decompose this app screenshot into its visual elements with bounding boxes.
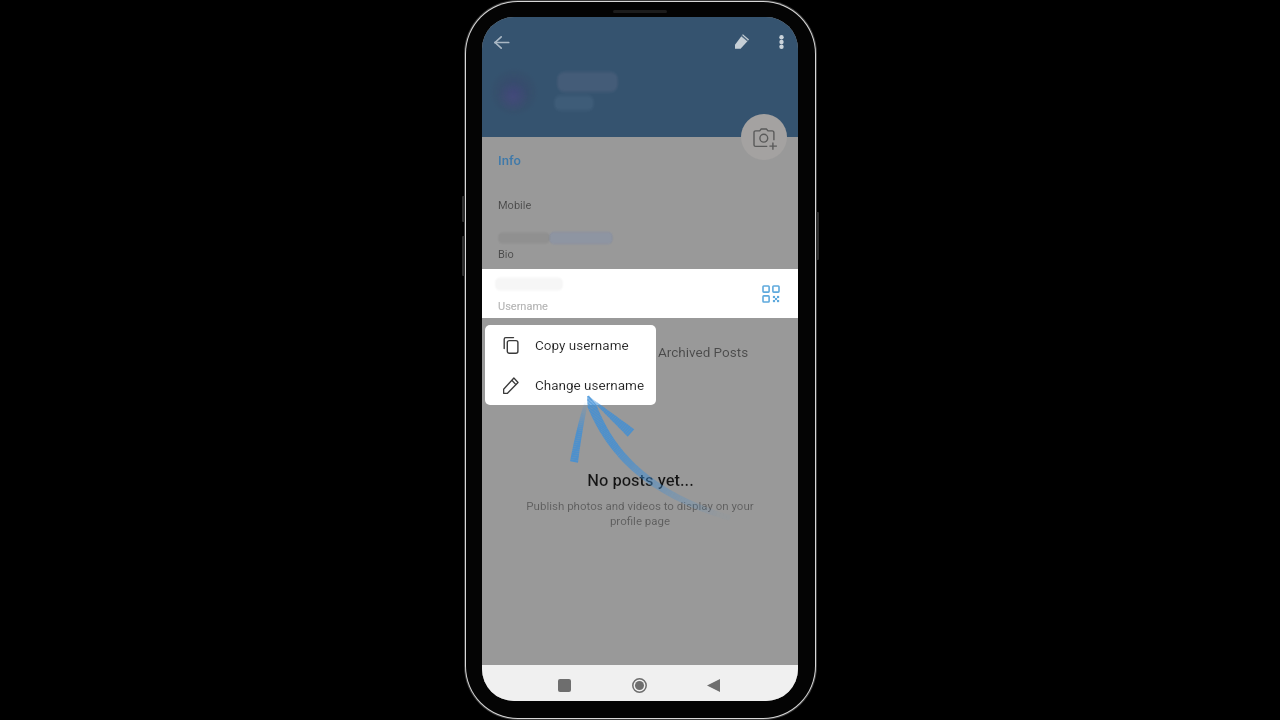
staticText: Mobile xyxy=(498,199,532,212)
button[interactable]: Change username xyxy=(485,365,656,405)
staticText: Copy username xyxy=(535,337,629,353)
button[interactable]: Add photo xyxy=(741,114,787,160)
staticText: Publish photos and videos to display on … xyxy=(526,499,754,528)
button[interactable]: Edit xyxy=(725,25,758,58)
button[interactable]: QR code xyxy=(759,282,783,306)
button[interactable]: Back xyxy=(485,26,518,59)
button[interactable]: More options xyxy=(765,25,798,58)
button[interactable]: Username xyxy=(482,269,798,318)
staticText: Archived Posts xyxy=(658,344,749,360)
staticText: Info xyxy=(498,153,521,168)
staticText: Bio xyxy=(498,248,514,261)
button[interactable]: Home xyxy=(615,667,663,701)
button[interactable]: Recent apps xyxy=(540,667,588,701)
staticText: Change username xyxy=(535,377,645,393)
button[interactable]: Back xyxy=(689,667,737,701)
button[interactable]: Copy username xyxy=(485,325,656,365)
staticText: No posts yet... xyxy=(587,471,694,490)
staticText: Username xyxy=(498,300,548,313)
